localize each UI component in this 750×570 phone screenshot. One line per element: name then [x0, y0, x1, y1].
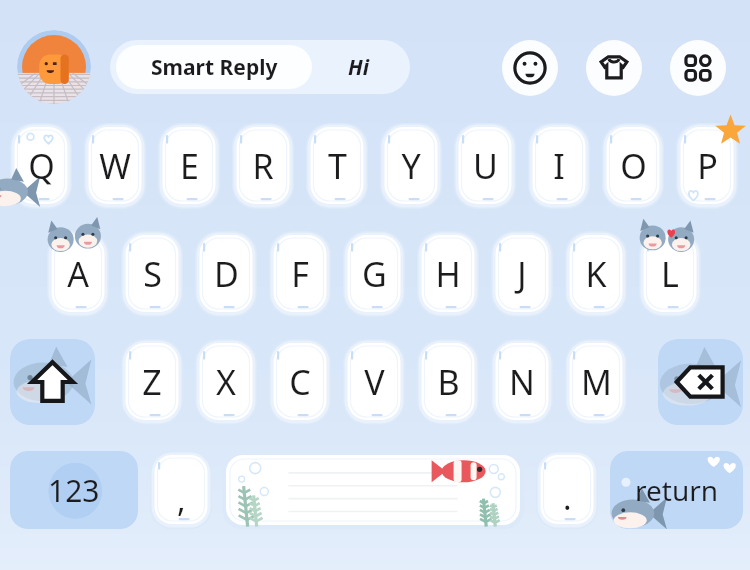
button[interactable]: F	[269, 231, 331, 317]
staticText: A	[67, 251, 89, 297]
staticText: E	[180, 143, 199, 189]
staticText: O	[620, 143, 647, 189]
staticText: return	[635, 471, 719, 509]
button[interactable]: V	[343, 339, 405, 425]
staticText: B	[437, 359, 460, 405]
button[interactable]: return	[610, 451, 743, 529]
button[interactable]: W	[84, 123, 146, 209]
staticText: C	[289, 359, 311, 405]
button[interactable]: H	[417, 231, 479, 317]
button[interactable]: ,	[150, 451, 212, 529]
staticText: F	[291, 251, 309, 297]
staticText: D	[214, 251, 239, 297]
staticText: M	[581, 359, 612, 405]
button[interactable]: Smart Reply	[110, 40, 410, 94]
button[interactable]: O	[602, 123, 664, 209]
button[interactable]: I	[528, 123, 590, 209]
staticText: K	[585, 251, 607, 297]
staticText: U	[473, 143, 498, 189]
staticText: X	[216, 359, 236, 405]
button[interactable]: M	[565, 339, 627, 425]
staticText: Hi	[348, 53, 369, 82]
staticText: W	[99, 143, 131, 189]
button[interactable]: C	[269, 339, 331, 425]
button[interactable]: U	[454, 123, 516, 209]
button[interactable]: S	[121, 231, 183, 317]
staticText: ,	[177, 478, 186, 522]
button[interactable]: R	[232, 123, 294, 209]
staticText: T	[328, 143, 347, 189]
button[interactable]: Shift	[10, 339, 95, 425]
button[interactable]: K	[565, 231, 627, 317]
button[interactable]: Smart Reply	[116, 45, 312, 89]
button[interactable]: Y	[380, 123, 442, 209]
button[interactable]: B	[417, 339, 479, 425]
button[interactable]: Emoji	[502, 40, 558, 96]
button[interactable]: E	[158, 123, 220, 209]
button[interactable]: Z	[121, 339, 183, 425]
staticText: N	[509, 359, 535, 405]
button[interactable]: Q	[10, 123, 72, 209]
staticText: P	[697, 143, 718, 189]
staticText: H	[435, 251, 461, 297]
button[interactable]: A	[47, 231, 109, 317]
staticText: G	[362, 251, 387, 297]
button[interactable]: Hi	[328, 40, 388, 94]
staticText: .	[563, 476, 572, 520]
staticText: J	[517, 251, 527, 297]
staticText: I	[553, 143, 565, 189]
button[interactable]: G	[343, 231, 405, 317]
button[interactable]: X	[195, 339, 257, 425]
button[interactable]: More	[670, 40, 726, 96]
button[interactable]: J	[491, 231, 553, 317]
staticText: L	[661, 251, 679, 297]
button[interactable]: .	[536, 451, 598, 529]
button[interactable]: Profile avatar	[17, 30, 91, 104]
button[interactable]: Backspace	[658, 339, 743, 425]
staticText: V	[364, 359, 385, 405]
staticText: Smart Reply	[151, 53, 278, 82]
staticText: R	[252, 143, 274, 189]
button[interactable]: P	[676, 123, 738, 209]
staticText: 123	[48, 470, 100, 511]
button[interactable]: Space	[222, 451, 524, 529]
staticText: Q	[28, 143, 55, 189]
button[interactable]: N	[491, 339, 553, 425]
button[interactable]: T	[306, 123, 368, 209]
button[interactable]: Themes	[586, 40, 642, 96]
staticText: S	[143, 251, 162, 297]
button[interactable]: L	[639, 231, 701, 317]
staticText: Y	[401, 143, 421, 189]
staticText: Z	[142, 359, 162, 405]
button[interactable]: D	[195, 231, 257, 317]
button[interactable]: 123	[10, 451, 138, 529]
